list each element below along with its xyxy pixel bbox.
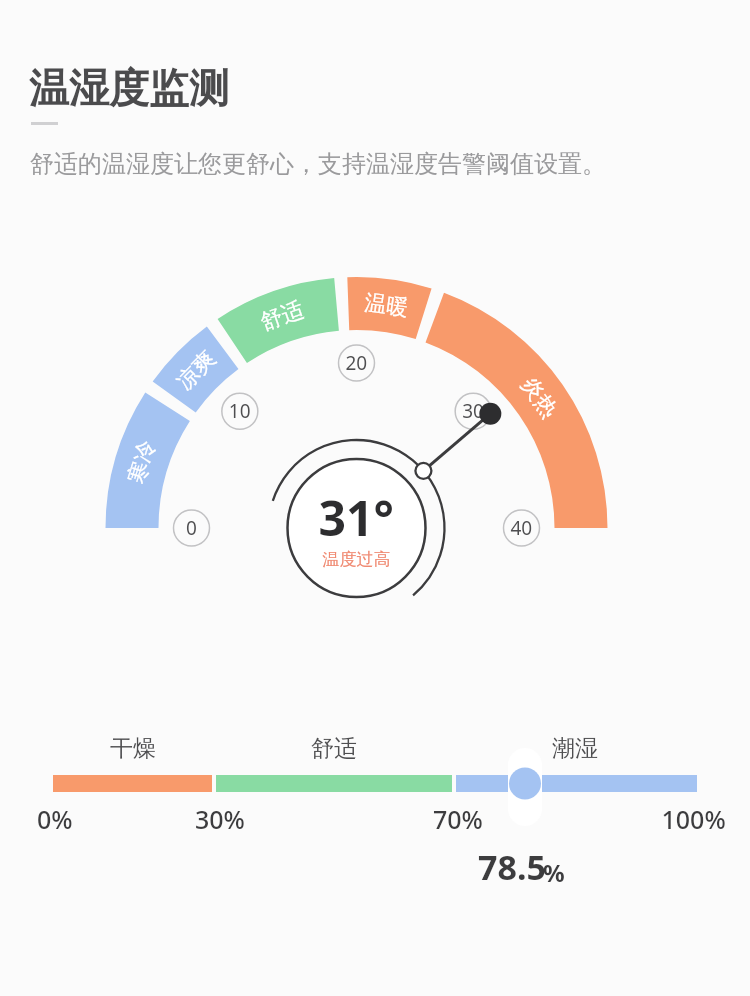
- button[interactable]: 温度表盘，当前 31 度，温度过高: [0, 0, 750, 996]
- staticText: 温湿度监测: [29, 63, 229, 113]
- button[interactable]: 湿度 78.5%: [0, 0, 750, 996]
- staticText: 舒适的温湿度让您更舒心，支持温湿度告警阈值设置。: [30, 149, 606, 179]
